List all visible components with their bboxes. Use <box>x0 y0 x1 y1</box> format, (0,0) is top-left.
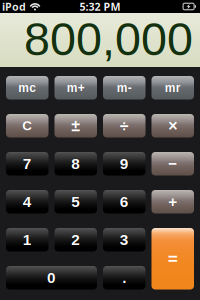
button[interactable]: 6 <box>103 190 145 213</box>
staticText: 8 <box>71 155 80 172</box>
button[interactable]: 5 <box>54 190 97 213</box>
staticText: 0 <box>47 269 56 286</box>
button[interactable]: 1 <box>6 228 48 251</box>
button[interactable]: − <box>151 152 194 175</box>
button[interactable]: . <box>103 266 145 289</box>
button[interactable]: m- <box>103 76 145 99</box>
button[interactable]: C <box>6 114 48 137</box>
staticText: ÷ <box>120 117 129 135</box>
button[interactable]: ÷ <box>103 114 145 137</box>
button[interactable]: mc <box>6 76 48 99</box>
staticText: iPod <box>2 0 26 14</box>
button[interactable]: 2 <box>54 228 97 251</box>
staticText: mc <box>18 81 36 94</box>
staticText: 6 <box>120 193 129 210</box>
button[interactable]: 7 <box>6 152 48 175</box>
staticText: 3 <box>120 231 129 248</box>
staticText: 4 <box>23 193 32 210</box>
button[interactable]: mr <box>151 76 194 99</box>
button[interactable]: + <box>151 190 194 213</box>
staticText: 800,000 <box>24 13 193 65</box>
button[interactable]: m+ <box>54 76 97 99</box>
staticText: m+ <box>67 81 85 94</box>
button[interactable]: 0 <box>6 266 97 289</box>
button[interactable]: = <box>151 228 194 289</box>
staticText: C <box>22 118 32 133</box>
staticText: ± <box>71 117 80 135</box>
staticText: − <box>168 155 177 172</box>
staticText: 9 <box>120 155 129 172</box>
staticText: 1 <box>23 231 32 248</box>
button[interactable]: × <box>151 114 194 137</box>
staticText: 5 <box>71 193 80 210</box>
button[interactable]: 8 <box>54 152 97 175</box>
staticText: 5:32 PM <box>79 0 120 14</box>
staticText: = <box>168 249 178 268</box>
button[interactable]: ± <box>54 114 97 137</box>
button[interactable]: 4 <box>6 190 48 213</box>
staticText: 2 <box>71 231 80 248</box>
staticText: m- <box>117 81 132 94</box>
staticText: × <box>168 117 177 135</box>
staticText: . <box>122 269 126 286</box>
staticText: 7 <box>23 155 32 172</box>
staticText: + <box>168 193 177 210</box>
staticText: mr <box>165 81 181 94</box>
button[interactable]: 9 <box>103 152 145 175</box>
button[interactable]: 3 <box>103 228 145 251</box>
